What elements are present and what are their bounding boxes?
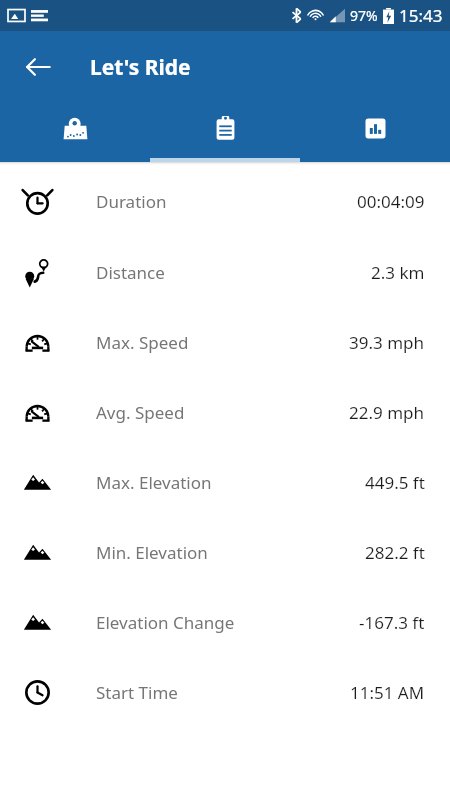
button[interactable]: Start Time (0, 657, 450, 727)
button[interactable]: Charts tab (300, 103, 450, 162)
button[interactable]: Summary tab (150, 103, 300, 162)
button[interactable]: Elevation Change (0, 587, 450, 657)
staticText: 15:43 (399, 4, 443, 27)
staticText: Max. Speed (96, 331, 189, 354)
button[interactable]: Distance (0, 237, 450, 307)
button[interactable]: Back (14, 43, 62, 91)
staticText: Start Time (96, 681, 178, 704)
button[interactable]: Max. Speed (0, 307, 450, 377)
button[interactable]: Avg. Speed (0, 377, 450, 447)
staticText: Distance (96, 261, 165, 284)
staticText: 39.3 mph (349, 331, 425, 354)
staticText: 449.5 ft (365, 471, 425, 494)
button[interactable]: Min. Elevation (0, 517, 450, 587)
staticText: 2.3 km (371, 261, 425, 284)
staticText: Min. Elevation (96, 541, 208, 564)
staticText: Max. Elevation (96, 471, 212, 494)
button[interactable]: Max. Elevation (0, 447, 450, 517)
staticText: 97% (350, 6, 378, 25)
button[interactable]: Duration (0, 165, 450, 237)
staticText: 22.9 mph (349, 401, 425, 424)
staticText: Avg. Speed (96, 401, 185, 424)
staticText: Elevation Change (96, 611, 235, 634)
staticText: Duration (96, 190, 167, 213)
button[interactable]: Map tab (0, 103, 150, 162)
staticText: 00:04:09 (357, 190, 425, 213)
staticText: 282.2 ft (365, 541, 425, 564)
staticText: -167.3 ft (359, 611, 425, 634)
staticText: 11:51 AM (350, 681, 425, 704)
staticText: Let's Ride (90, 53, 191, 82)
